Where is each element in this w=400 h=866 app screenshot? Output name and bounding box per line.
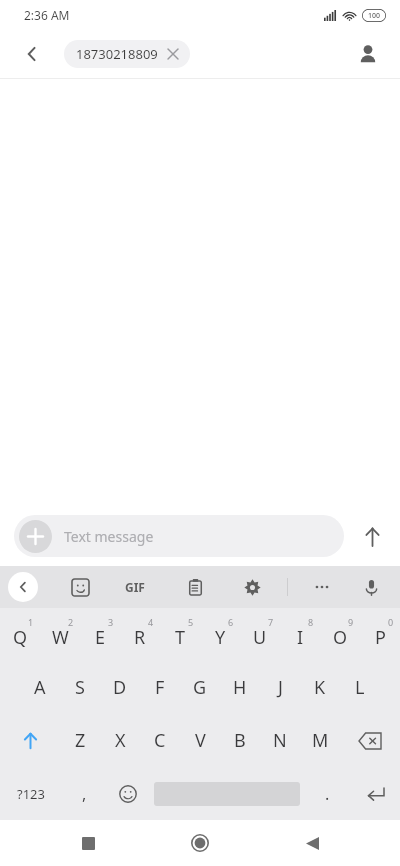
staticText: H bbox=[233, 675, 247, 700]
staticText: Z bbox=[75, 728, 86, 753]
staticText: A bbox=[34, 675, 46, 700]
staticText: 100 bbox=[368, 11, 381, 21]
staticText: E bbox=[95, 625, 106, 650]
staticText: C bbox=[154, 728, 166, 753]
button[interactable]: N bbox=[260, 714, 300, 767]
staticText: 2:36 AM bbox=[24, 7, 70, 23]
staticText: N bbox=[273, 728, 287, 753]
button[interactable]: Settings bbox=[235, 570, 269, 604]
button[interactable]: 18730218809 bbox=[64, 40, 190, 68]
button[interactable]: Back bbox=[12, 34, 52, 74]
button[interactable]: B bbox=[220, 714, 260, 767]
button[interactable]: ?123 bbox=[0, 767, 62, 820]
button[interactable]: Y bbox=[200, 608, 240, 661]
button[interactable]: A bbox=[20, 661, 60, 714]
button[interactable]: R bbox=[120, 608, 160, 661]
button[interactable]: U bbox=[240, 608, 280, 661]
button[interactable]: GIF bbox=[118, 570, 152, 604]
staticText: X bbox=[115, 728, 126, 753]
button[interactable]: Recent apps bbox=[64, 820, 112, 866]
button[interactable]: Send bbox=[344, 512, 400, 560]
button[interactable]: J bbox=[260, 661, 300, 714]
staticText: G bbox=[193, 675, 207, 700]
button[interactable]: T bbox=[160, 608, 200, 661]
staticText: V bbox=[195, 728, 206, 753]
staticText: 1 bbox=[28, 616, 34, 628]
button[interactable]: S bbox=[60, 661, 100, 714]
staticText: K bbox=[314, 675, 326, 700]
button[interactable]: O bbox=[320, 608, 360, 661]
button[interactable]: Q bbox=[0, 608, 40, 661]
staticText: S bbox=[75, 675, 85, 700]
button[interactable]: Enter bbox=[350, 767, 400, 820]
staticText: D bbox=[113, 675, 127, 700]
staticText: Text message bbox=[64, 527, 154, 546]
button[interactable]: V bbox=[180, 714, 220, 767]
button[interactable]: E bbox=[80, 608, 120, 661]
button[interactable]: Collapse toolbar bbox=[8, 572, 38, 602]
button[interactable]: Text message bbox=[14, 515, 344, 557]
staticText: Y bbox=[215, 625, 226, 650]
staticText: GIF bbox=[125, 579, 145, 595]
staticText: . bbox=[325, 783, 330, 805]
staticText: R bbox=[134, 625, 146, 650]
button[interactable]: X bbox=[100, 714, 140, 767]
button[interactable]: H bbox=[220, 661, 260, 714]
button[interactable]: Contact bbox=[348, 34, 388, 74]
button[interactable]: L bbox=[340, 661, 380, 714]
button[interactable]: G bbox=[180, 661, 220, 714]
staticText: 4 bbox=[148, 616, 154, 628]
button[interactable]: Voice input bbox=[354, 570, 388, 604]
button[interactable]: Shift bbox=[0, 714, 60, 767]
staticText: Q bbox=[13, 625, 28, 650]
staticText: 18730218809 bbox=[76, 45, 158, 63]
button[interactable]: P bbox=[360, 608, 400, 661]
button[interactable]: M bbox=[300, 714, 340, 767]
button[interactable]: . bbox=[304, 767, 350, 820]
button[interactable]: More options bbox=[305, 570, 339, 604]
staticText: M bbox=[312, 728, 329, 753]
staticText: 3 bbox=[108, 616, 114, 628]
staticText: 0 bbox=[388, 616, 394, 628]
button[interactable]: F bbox=[140, 661, 180, 714]
staticText: T bbox=[175, 625, 186, 650]
staticText: 5 bbox=[188, 616, 194, 628]
button[interactable]: Z bbox=[60, 714, 100, 767]
staticText: J bbox=[278, 675, 283, 700]
button[interactable]: , bbox=[62, 767, 106, 820]
staticText: 6 bbox=[228, 616, 234, 628]
button[interactable]: I bbox=[280, 608, 320, 661]
button[interactable]: W bbox=[40, 608, 80, 661]
staticText: L bbox=[355, 675, 365, 700]
button[interactable]: Home bbox=[176, 820, 224, 866]
button[interactable]: Backspace bbox=[340, 714, 400, 767]
staticText: 9 bbox=[348, 616, 354, 628]
button[interactable]: C bbox=[140, 714, 180, 767]
button[interactable]: Clipboard bbox=[178, 570, 212, 604]
button[interactable]: Back bbox=[288, 820, 336, 866]
staticText: F bbox=[155, 675, 165, 700]
button[interactable]: K bbox=[300, 661, 340, 714]
staticText: 8 bbox=[308, 616, 314, 628]
staticText: I bbox=[297, 625, 304, 650]
staticText: , bbox=[82, 783, 87, 805]
staticText: 7 bbox=[268, 616, 274, 628]
staticText: W bbox=[52, 625, 69, 650]
button[interactable]: Emoji bbox=[106, 767, 150, 820]
staticText: U bbox=[253, 625, 267, 650]
button[interactable]: D bbox=[100, 661, 140, 714]
staticText: ?123 bbox=[17, 785, 45, 803]
staticText: O bbox=[333, 625, 348, 650]
button[interactable]: Stickers bbox=[63, 570, 97, 604]
staticText: P bbox=[375, 625, 386, 650]
staticText: B bbox=[234, 728, 246, 753]
staticText: 2 bbox=[68, 616, 74, 628]
